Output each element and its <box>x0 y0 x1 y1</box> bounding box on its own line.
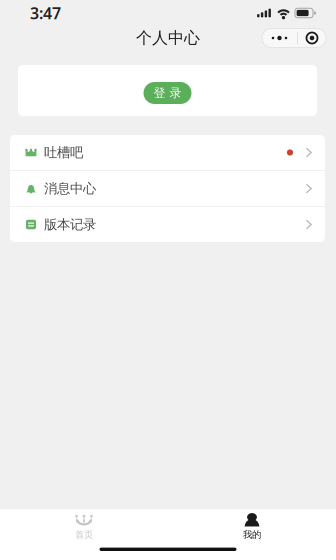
staticText: 我的 <box>243 529 261 540</box>
staticText: 首页 <box>75 529 93 540</box>
staticText: 个人中心 <box>136 28 200 48</box>
staticText: 吐槽吧 <box>44 144 83 161</box>
staticText: 登 录 <box>153 86 181 100</box>
button[interactable]: More <box>262 28 297 47</box>
button[interactable]: 消息中心 <box>10 171 325 206</box>
button[interactable]: 首页 <box>0 509 168 545</box>
button[interactable]: Close <box>298 28 326 47</box>
button[interactable]: 登 录 <box>143 82 191 104</box>
staticText: 消息中心 <box>44 180 96 197</box>
button[interactable]: 版本记录 <box>10 207 325 242</box>
button[interactable]: 我的 <box>168 509 336 545</box>
button[interactable]: 吐槽吧 <box>10 135 325 170</box>
staticText: 3:47 <box>30 2 61 24</box>
staticText: 版本记录 <box>44 216 96 233</box>
